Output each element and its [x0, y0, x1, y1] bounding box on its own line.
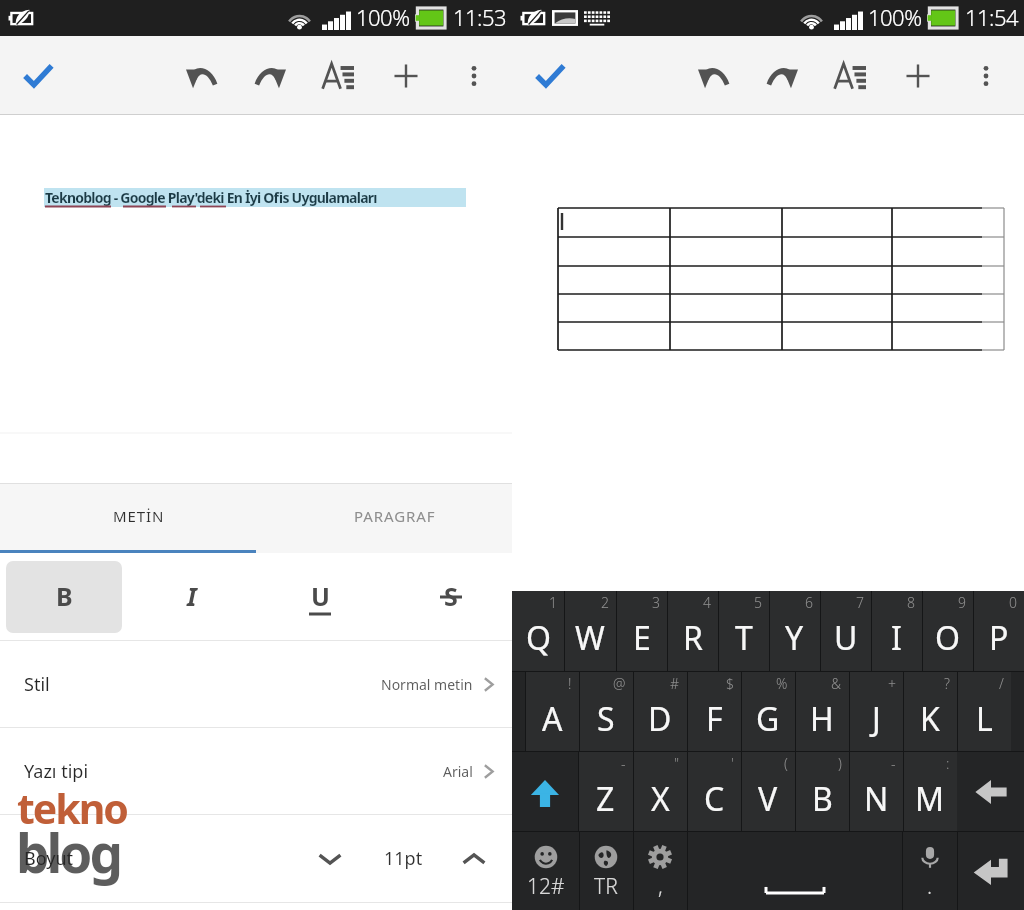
staticText: 11:53: [453, 2, 507, 32]
button[interactable]: O: [922, 591, 973, 671]
staticText: 0: [1009, 593, 1017, 612]
button[interactable]: Yazı tipi: [0, 728, 512, 815]
staticText: S: [444, 579, 458, 613]
button[interactable]: L: [957, 672, 1011, 751]
staticText: %: [776, 674, 788, 693]
button[interactable]: U: [262, 561, 378, 633]
button[interactable]: T: [718, 591, 769, 671]
button[interactable]: Enter: [957, 832, 1024, 910]
staticText: U: [834, 616, 858, 660]
button[interactable]: Done: [12, 36, 64, 115]
button[interactable]: Decrease size: [306, 815, 354, 902]
staticText: !: [568, 674, 572, 693]
staticText: O: [935, 616, 960, 660]
button[interactable]: Backspace: [957, 752, 1024, 831]
button[interactable]: X: [633, 752, 687, 831]
staticText: F: [706, 697, 723, 741]
staticText: U: [311, 579, 330, 613]
staticText: 6: [805, 593, 813, 612]
button[interactable]: U: [820, 591, 871, 671]
staticText: $: [726, 674, 734, 693]
staticText: 4: [703, 593, 711, 612]
button[interactable]: 12#: [512, 832, 579, 910]
button[interactable]: Space: [687, 832, 902, 910]
button[interactable]: .: [902, 832, 957, 910]
button[interactable]: Undo: [168, 36, 236, 115]
staticText: I: [187, 579, 197, 613]
button[interactable]: W: [564, 591, 616, 671]
staticText: 11:54: [965, 2, 1019, 32]
button[interactable]: TR: [579, 832, 633, 910]
button[interactable]: B: [795, 752, 849, 831]
button[interactable]: V: [741, 752, 795, 831]
staticText: R: [683, 616, 703, 660]
button[interactable]: Format: [304, 36, 372, 115]
staticText: #: [670, 674, 680, 693]
button[interactable]: I: [871, 591, 922, 671]
button[interactable]: Insert: [372, 36, 440, 115]
button[interactable]: G: [741, 672, 795, 751]
staticText: B: [56, 579, 73, 613]
button[interactable]: Y: [769, 591, 820, 671]
button[interactable]: Done: [524, 36, 576, 115]
button[interactable]: Increase size: [450, 815, 498, 902]
button[interactable]: K: [903, 672, 957, 751]
button[interactable]: Format: [816, 36, 884, 115]
button[interactable]: Insert: [884, 36, 952, 115]
staticText: Y: [785, 616, 804, 660]
button[interactable]: P: [973, 591, 1024, 671]
button[interactable]: J: [849, 672, 903, 751]
staticText: A: [542, 697, 563, 741]
button[interactable]: Redo: [236, 36, 304, 115]
button[interactable]: Shift: [512, 752, 578, 831]
staticText: I: [891, 616, 902, 660]
button[interactable]: M: [903, 752, 957, 831]
button[interactable]: C: [687, 752, 741, 831]
button[interactable]: More options: [952, 36, 1020, 115]
button[interactable]: More options: [440, 36, 508, 115]
staticText: 100%: [356, 2, 410, 32]
staticText: K: [920, 697, 940, 741]
button[interactable]: B: [6, 561, 122, 633]
staticText: PARAGRAF: [354, 506, 436, 526]
button[interactable]: Z: [578, 752, 633, 831]
staticText: S: [597, 697, 615, 741]
staticText: blog: [16, 816, 120, 888]
button[interactable]: S: [579, 672, 633, 751]
staticText: 100%: [868, 2, 922, 32]
staticText: Arial: [443, 762, 473, 781]
staticText: ): [838, 754, 842, 773]
button[interactable]: R: [667, 591, 718, 671]
button[interactable]: S: [393, 561, 509, 633]
staticText: (: [784, 754, 788, 773]
staticText: V: [758, 777, 778, 821]
staticText: &: [831, 674, 842, 693]
button[interactable]: Undo: [680, 36, 748, 115]
button[interactable]: D: [633, 672, 687, 751]
staticText: 2: [601, 593, 609, 612]
staticText: -: [621, 754, 626, 773]
staticText: METİN: [113, 506, 165, 526]
button[interactable]: ,: [633, 832, 687, 910]
staticText: :: [946, 754, 950, 773]
button[interactable]: H: [795, 672, 849, 751]
button[interactable]: N: [849, 752, 903, 831]
button[interactable]: Stil: [0, 641, 512, 728]
staticText: B: [812, 777, 833, 821]
staticText: N: [864, 777, 889, 821]
button[interactable]: F: [687, 672, 741, 751]
staticText: +: [888, 674, 896, 693]
button[interactable]: Redo: [748, 36, 816, 115]
staticText: tekno: [17, 780, 127, 836]
button[interactable]: METİN: [0, 484, 256, 553]
button[interactable]: A: [525, 672, 579, 751]
button[interactable]: Q: [512, 591, 564, 671]
button[interactable]: PARAGRAF: [256, 484, 512, 553]
staticText: ,: [658, 872, 663, 901]
staticText: /: [999, 674, 1004, 693]
staticText: G: [756, 697, 780, 741]
staticText: 11pt: [384, 846, 423, 871]
staticText: M: [915, 777, 945, 821]
button[interactable]: E: [616, 591, 667, 671]
button[interactable]: I: [134, 561, 250, 633]
